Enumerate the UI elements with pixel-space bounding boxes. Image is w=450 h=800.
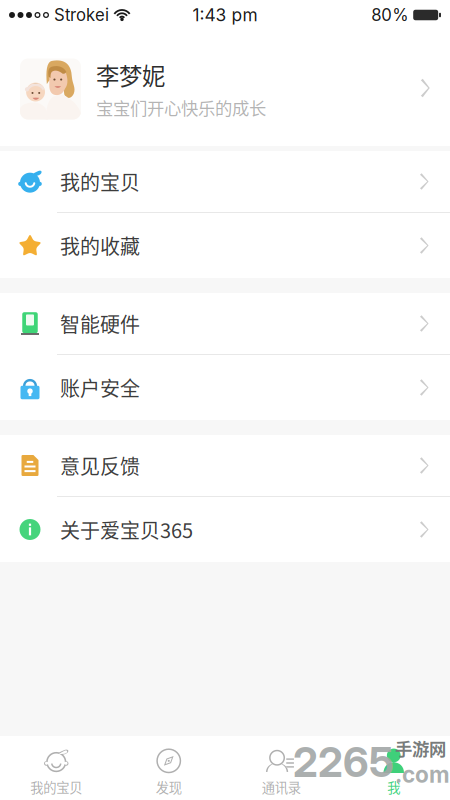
button[interactable]: 关于爱宝贝365 — [0, 497, 450, 562]
button[interactable]: 发现 — [112, 736, 225, 800]
button[interactable]: 李梦妮 — [0, 30, 450, 146]
staticText: 手游网 — [395, 736, 446, 761]
staticText: Strokei — [54, 5, 109, 25]
staticText: 账户安全 — [60, 373, 140, 402]
staticText: 宝宝们开心快乐的成长 — [96, 95, 266, 120]
button[interactable]: 智能硬件 — [0, 293, 450, 355]
button[interactable]: 账户安全 — [0, 355, 450, 420]
staticText: 智能硬件 — [60, 309, 140, 338]
button[interactable]: 我的收藏 — [0, 213, 450, 278]
staticText: 李梦妮 — [96, 58, 165, 92]
staticText: 80% — [371, 5, 408, 25]
button[interactable]: 意见反馈 — [0, 435, 450, 497]
staticText: .com — [395, 761, 450, 788]
staticText: 关于爱宝贝365 — [60, 515, 193, 544]
staticText: 我的收藏 — [60, 231, 140, 260]
button[interactable]: 通讯录 — [225, 736, 337, 800]
button[interactable]: 我的宝贝 — [0, 736, 112, 800]
staticText: 我的宝贝 — [60, 167, 140, 196]
staticText: 我 — [387, 777, 400, 797]
button[interactable]: 我的宝贝 — [0, 151, 450, 213]
staticText: 2265 — [293, 737, 394, 787]
staticText: 意见反馈 — [60, 451, 140, 480]
staticText: 1:43 pm — [192, 4, 257, 25]
button[interactable]: 我 — [337, 736, 450, 800]
staticText: 发现 — [156, 777, 182, 797]
staticText: 我的宝贝 — [30, 777, 82, 797]
staticText: 通讯录 — [262, 777, 301, 797]
